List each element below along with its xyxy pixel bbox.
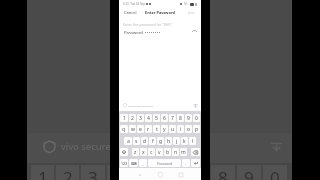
staticText: g (159, 138, 163, 145)
staticText: vivo secure keyboard (128, 104, 153, 107)
staticText: ⌨ (131, 161, 137, 166)
staticText: 5 (140, 166, 150, 180)
button[interactable]: Join (188, 10, 196, 15)
staticText: Cancel (124, 10, 137, 15)
button[interactable]: z (132, 148, 139, 156)
button[interactable]: 6 (161, 114, 168, 122)
staticText: f (152, 138, 154, 145)
staticText: 8 (179, 115, 182, 122)
staticText: s (135, 138, 138, 145)
staticText: a (127, 138, 130, 145)
staticText: 7 (171, 115, 174, 122)
button[interactable]: n (172, 148, 179, 156)
staticText: 6 (166, 166, 176, 180)
button[interactable]: Cancel (124, 10, 137, 15)
staticText: 3 (139, 115, 142, 122)
staticText: b (166, 149, 170, 156)
button[interactable]: w (129, 125, 136, 133)
button[interactable]: a (124, 137, 132, 145)
button[interactable]: d (141, 137, 148, 145)
button[interactable]: 2 (129, 114, 136, 122)
button[interactable]: Password (148, 159, 181, 167)
button[interactable]: m (180, 148, 187, 156)
button[interactable]: s (133, 137, 140, 145)
button[interactable]: 1 (120, 114, 128, 122)
button[interactable]: 4 (145, 114, 152, 122)
button[interactable]: q (120, 125, 128, 133)
button[interactable]: e (137, 125, 144, 133)
button[interactable]: u (169, 125, 176, 133)
staticText: j (176, 138, 178, 145)
button[interactable]: x (140, 148, 147, 156)
button[interactable]: , (139, 159, 147, 167)
staticText: 3 (88, 166, 98, 180)
staticText: Password (124, 30, 143, 36)
other: Hide keyboard (193, 103, 198, 108)
button[interactable]: Switch keyboard (129, 159, 138, 167)
button[interactable]: 9 (185, 114, 192, 122)
button[interactable]: g (157, 137, 164, 145)
staticText: d (143, 138, 147, 145)
button[interactable]: p (193, 125, 200, 133)
button[interactable]: Home (157, 171, 164, 178)
staticText: l (192, 138, 194, 145)
staticText: 0 (270, 166, 280, 180)
button[interactable]: y (161, 125, 168, 133)
staticText: h (167, 138, 171, 145)
button[interactable]: o (185, 125, 192, 133)
button[interactable]: c (148, 148, 155, 156)
staticText: 2 (63, 166, 73, 180)
staticText: 0 (195, 115, 198, 122)
button[interactable]: Backspace (191, 148, 200, 156)
button[interactable]: 3 (137, 114, 144, 122)
button[interactable]: l (189, 137, 196, 145)
staticText: q (122, 126, 126, 133)
staticText: 5G (184, 2, 188, 6)
button[interactable]: f (149, 137, 156, 145)
other: Show password (192, 30, 197, 35)
button[interactable]: Shift (120, 148, 128, 156)
staticText: p (195, 126, 199, 133)
staticText: o (187, 126, 191, 133)
staticText: 123 (121, 161, 128, 166)
staticText: , (142, 161, 144, 166)
button[interactable]: j (173, 137, 180, 145)
staticText: r (147, 126, 150, 133)
staticText: c (150, 149, 153, 156)
button[interactable]: t (153, 125, 160, 133)
button[interactable]: 123 (120, 159, 128, 167)
staticText: y (163, 126, 166, 133)
staticText: 1 (38, 166, 48, 180)
button[interactable]: Back (136, 171, 143, 178)
button[interactable]: 0 (193, 114, 200, 122)
button[interactable]: h (165, 137, 172, 145)
staticText: z (134, 149, 137, 156)
button[interactable]: 5 (153, 114, 160, 122)
staticText: 2 (131, 115, 134, 122)
staticText: 5 (155, 115, 158, 122)
button[interactable]: Enter (191, 159, 200, 167)
staticText: 8 (218, 166, 228, 180)
button[interactable]: k (181, 137, 188, 145)
staticText: 9 (187, 115, 190, 122)
button[interactable]: 8 (177, 114, 184, 122)
staticText: 4 (114, 166, 124, 180)
button[interactable]: r (145, 125, 152, 133)
staticText: 4 (147, 115, 150, 122)
staticText: v (158, 149, 161, 156)
button[interactable]: b (164, 148, 171, 156)
staticText: x (142, 149, 145, 156)
staticText: 5:13 Tue 24 Sep (123, 2, 145, 6)
staticText: 6 (163, 115, 166, 122)
staticText: 9 (244, 166, 254, 180)
button[interactable]: Recents (177, 171, 184, 178)
button[interactable]: . (182, 159, 190, 167)
button[interactable]: i (177, 125, 184, 133)
staticText: w (131, 126, 135, 133)
staticText: e (139, 126, 142, 133)
staticText: vivo secure keyboard (61, 140, 155, 153)
staticText: t (156, 126, 158, 133)
button[interactable]: 7 (169, 114, 176, 122)
button[interactable]: v (156, 148, 163, 156)
staticText: n (174, 149, 178, 156)
